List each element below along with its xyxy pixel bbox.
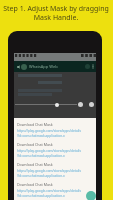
- button[interactable]: Download Chat Mask: [14, 118, 96, 138]
- button[interactable]: Lock: [78, 102, 83, 107]
- other: Back: [16, 65, 20, 69]
- button[interactable]: New chat: [86, 191, 96, 200]
- staticText: Download Chat Mask: [17, 182, 53, 187]
- button[interactable]: Download Chat Mask: [14, 178, 96, 198]
- staticText: Download Chat Mask: [17, 122, 53, 127]
- staticText: Download Chat Mask: [17, 142, 53, 147]
- staticText: Step 1. Adjust Mask by dragging Mask Han…: [1, 4, 111, 22]
- staticText: https://play.google.com/store/apps/detai…: [17, 189, 81, 198]
- staticText: Download Chat Mask: [17, 162, 53, 167]
- button[interactable]: Download Chat Mask: [14, 158, 96, 178]
- button[interactable]: Download Chat Mask: [14, 198, 96, 200]
- staticText: https://play.google.com/store/apps/detai…: [17, 169, 81, 178]
- staticText: https://play.google.com/store/apps/detai…: [17, 149, 81, 158]
- staticText: https://play.google.com/store/apps/detai…: [17, 129, 81, 138]
- staticText: WhatsApp Web: [29, 64, 58, 69]
- button[interactable]: Camera: [89, 102, 94, 107]
- button[interactable]: Download Chat Mask: [14, 138, 96, 158]
